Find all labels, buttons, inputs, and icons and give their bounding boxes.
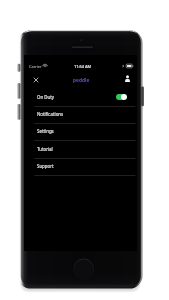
staticText: Support xyxy=(37,163,54,169)
staticText: Tutorial xyxy=(37,146,53,152)
button[interactable]: Support xyxy=(24,159,137,176)
button[interactable]: Tutorial xyxy=(24,142,137,159)
staticText: Settings xyxy=(37,128,54,134)
staticText: peddle xyxy=(73,77,90,84)
button[interactable]: Notifications xyxy=(24,107,137,124)
staticText: 11:54 AM xyxy=(26,64,139,69)
button[interactable]: On Duty xyxy=(24,90,137,107)
staticText: On Duty xyxy=(37,94,55,100)
button[interactable]: peddle xyxy=(70,75,92,85)
button[interactable]: Account xyxy=(122,73,133,84)
button[interactable]: Close xyxy=(30,74,41,85)
staticText: Notifications xyxy=(37,111,64,117)
button[interactable]: Settings xyxy=(24,124,137,141)
staticText: Carrier xyxy=(29,64,42,69)
